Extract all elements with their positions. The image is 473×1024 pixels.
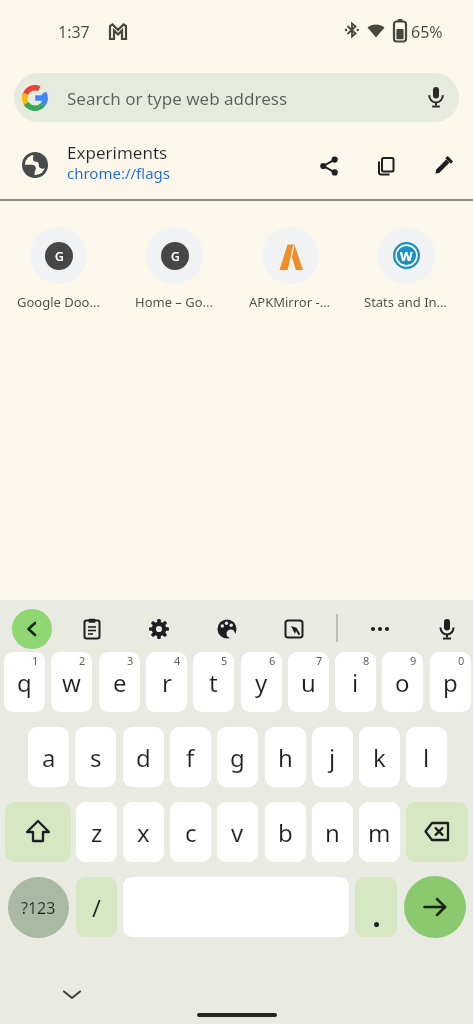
button[interactable] [12, 609, 52, 649]
button[interactable]: m [359, 802, 400, 862]
button[interactable] [216, 618, 238, 640]
staticText: G [171, 248, 180, 264]
staticText: 8 [363, 653, 370, 668]
staticText: Search or type web address [67, 87, 288, 110]
staticText: 2 [79, 653, 86, 668]
staticText: t [209, 666, 218, 699]
staticText: j [329, 741, 336, 774]
staticText: v [231, 816, 244, 849]
staticText: 1:37 [58, 21, 90, 43]
button[interactable]: o [382, 652, 423, 712]
staticText: b [278, 816, 293, 849]
staticText: s [90, 741, 102, 774]
button[interactable]: ?123 [8, 877, 69, 938]
button[interactable]: Search or type web address [14, 73, 459, 122]
staticText: u [301, 666, 316, 699]
button[interactable]: W [349, 222, 463, 314]
staticText: APKMirror -... [249, 293, 331, 311]
button[interactable] [436, 618, 458, 640]
button[interactable] [355, 877, 397, 937]
button[interactable]: c [170, 802, 211, 862]
staticText: / [92, 891, 101, 924]
button[interactable]: x [123, 802, 164, 862]
button[interactable]: z [76, 802, 117, 862]
staticText: Home – Go... [135, 293, 214, 311]
staticText: G [55, 248, 64, 264]
button[interactable]: p [430, 652, 471, 712]
button[interactable]: G [117, 222, 231, 314]
button[interactable]: APKMirror -... [233, 222, 347, 314]
staticText: l [423, 741, 430, 774]
button[interactable] [81, 618, 103, 640]
button[interactable]: k [359, 727, 400, 787]
button[interactable]: s [75, 727, 116, 787]
button[interactable]: a [28, 727, 69, 787]
button[interactable]: h [265, 727, 306, 787]
staticText: 7 [316, 653, 323, 668]
staticText: Stats and In... [364, 293, 448, 311]
button[interactable]: w [51, 652, 92, 712]
staticText: e [113, 666, 127, 699]
button[interactable] [404, 876, 466, 938]
staticText: a [42, 741, 56, 774]
button[interactable]: / [76, 877, 117, 937]
button[interactable]: i [335, 652, 376, 712]
staticText: W [400, 247, 413, 265]
staticText: Experiments [67, 141, 168, 164]
staticText: m [368, 816, 391, 849]
button[interactable] [5, 802, 71, 862]
button[interactable]: l [406, 727, 447, 787]
button[interactable] [148, 618, 170, 640]
button[interactable]: d [123, 727, 164, 787]
staticText: 6 [269, 653, 276, 668]
button[interactable]: u [288, 652, 329, 712]
button[interactable]: b [265, 802, 306, 862]
staticText: f [186, 741, 195, 774]
staticText: 1 [32, 653, 39, 668]
staticText: k [373, 741, 386, 774]
staticText: Google Doo... [17, 293, 100, 311]
button[interactable]: g [217, 727, 258, 787]
button[interactable] [406, 802, 468, 862]
staticText: 9 [410, 653, 417, 668]
button[interactable]: G [1, 222, 115, 314]
button[interactable]: q [4, 652, 45, 712]
staticText: z [91, 816, 103, 849]
staticText: ?123 [21, 897, 56, 919]
button[interactable]: j [312, 727, 353, 787]
staticText: 4 [174, 653, 181, 668]
staticText: h [278, 741, 293, 774]
staticText: y [255, 666, 268, 699]
staticText: w [62, 666, 81, 699]
staticText: n [325, 816, 340, 849]
staticText: 65% [411, 21, 443, 43]
staticText: q [17, 666, 32, 699]
button[interactable]: t [193, 652, 234, 712]
button[interactable]: e [99, 652, 140, 712]
staticText: r [162, 666, 172, 699]
button[interactable] [369, 618, 391, 640]
button[interactable]: n [312, 802, 353, 862]
staticText: p [443, 666, 458, 699]
button[interactable]: f [170, 727, 211, 787]
staticText: 5 [221, 653, 228, 668]
button[interactable]: y [241, 652, 282, 712]
staticText: chrome://flags [67, 163, 170, 183]
button[interactable]: Experiments [0, 130, 473, 198]
staticText: i [352, 666, 359, 699]
staticText: 0 [458, 653, 465, 668]
staticText: g [230, 741, 245, 774]
button[interactable] [283, 618, 305, 640]
staticText: c [185, 816, 197, 849]
button[interactable]: r [146, 652, 187, 712]
button[interactable]: v [217, 802, 258, 862]
staticText: x [137, 816, 150, 849]
staticText: o [395, 666, 410, 699]
staticText: 3 [127, 653, 134, 668]
staticText: d [136, 741, 151, 774]
